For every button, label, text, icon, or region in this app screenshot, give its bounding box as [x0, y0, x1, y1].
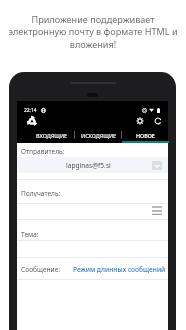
button[interactable]: Contacts	[151, 205, 163, 217]
staticText: Приложение поддерживает электронную почт…	[0, 13, 186, 51]
staticText: ВХОДЯЩИЕ	[36, 132, 68, 139]
button[interactable]: ВХОДЯЩИЕ	[28, 129, 75, 143]
button[interactable]: НОВОЕ	[122, 129, 169, 143]
staticText: Тема:	[21, 230, 39, 238]
staticText: Режим длинных сообщений	[73, 265, 166, 274]
button[interactable]: Settings	[133, 114, 147, 128]
button[interactable]: Expand sender	[152, 161, 162, 170]
button[interactable]: Recycle	[25, 114, 39, 128]
button[interactable]	[17, 240, 168, 257]
staticText: Сообщение:	[21, 265, 61, 274]
staticText: Отправитель:	[21, 147, 65, 155]
staticText: 22:14	[24, 107, 37, 114]
button[interactable]: Refresh	[151, 114, 165, 128]
button[interactable]: Contacts	[17, 203, 168, 219]
staticText: Получатель:	[21, 189, 61, 197]
staticText: lapginas@f5.si	[66, 161, 111, 170]
button[interactable]: Режим длинных сообщений	[73, 265, 166, 274]
button[interactable]: ИСХОДЯЩИЕ	[75, 129, 122, 143]
staticText: НОВОЕ	[136, 132, 155, 139]
button[interactable]: lapginas@f5.si	[17, 157, 168, 173]
staticText: ИСХОДЯЩИЕ	[81, 132, 117, 139]
